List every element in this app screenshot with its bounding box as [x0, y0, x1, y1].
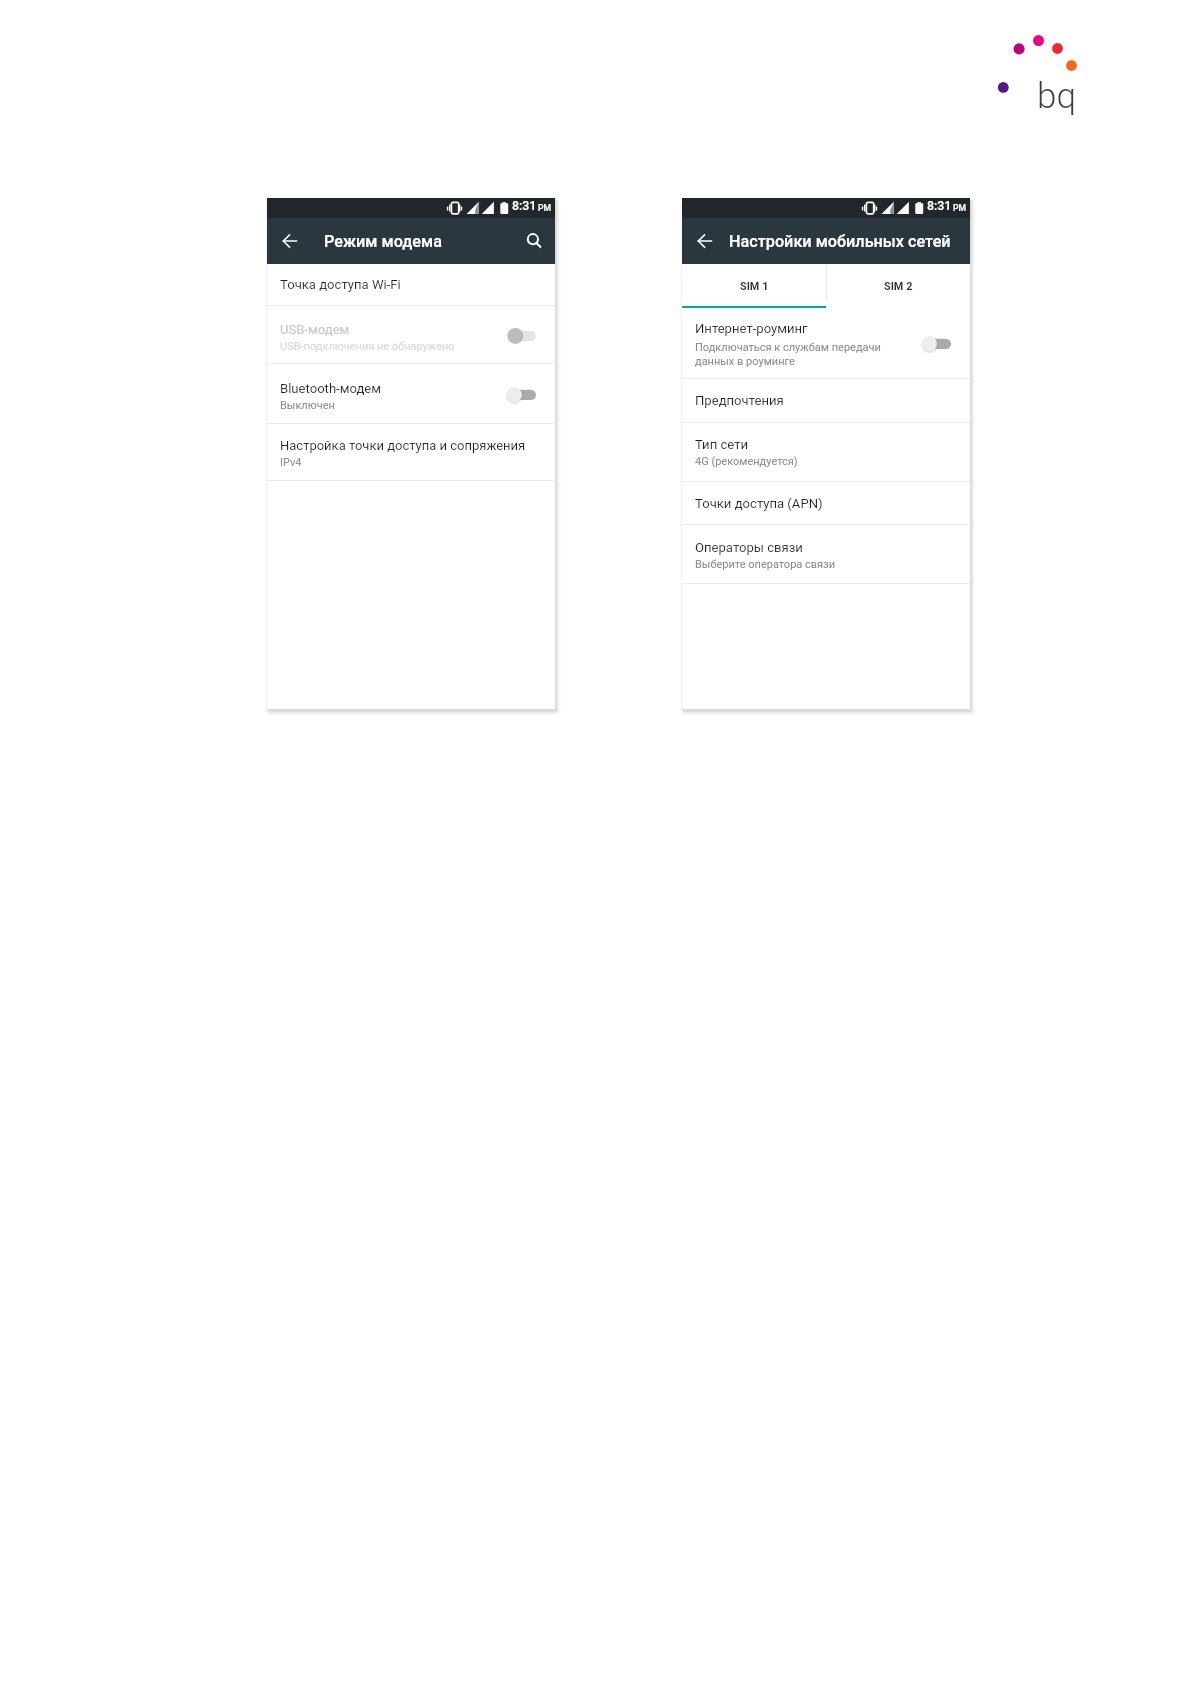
staticText: USB-подключения не обнаружено [280, 340, 455, 353]
staticText: 4G (рекомендуется) [695, 455, 798, 468]
staticText: Интернет-роуминг [695, 321, 808, 336]
staticText: Bluetooth-модем [280, 381, 381, 396]
staticText: PM [538, 203, 552, 213]
staticText: 8:31 [927, 198, 952, 213]
staticText: Операторы связи [695, 540, 803, 555]
staticText: Настройки мобильных сетей [729, 232, 951, 251]
button[interactable]: Search [519, 225, 551, 257]
staticText: SIM 1 [740, 280, 769, 293]
staticText: IPv4 [280, 456, 302, 469]
button[interactable]: bq logo [990, 20, 1090, 120]
button[interactable]: Точки доступа (APN) [682, 482, 970, 524]
staticText: PM [953, 203, 967, 213]
button[interactable]: Точка доступа Wi-Fi [267, 264, 555, 305]
staticText: Тип сети [695, 437, 749, 452]
button[interactable]: Тип сети [682, 423, 970, 481]
button[interactable]: SIM 1 [682, 264, 826, 308]
staticText: Выключен [280, 399, 335, 412]
button[interactable]: Операторы связи [682, 525, 970, 583]
button[interactable]: Switch [504, 383, 536, 405]
button[interactable]: SIM 2 [826, 264, 970, 308]
button[interactable]: Настройка точки доступа и сопряжения [267, 424, 555, 480]
staticText: SIM 2 [884, 280, 913, 293]
staticText: Точка доступа Wi-Fi [280, 277, 401, 292]
staticText: Предпочтения [695, 393, 784, 408]
button[interactable]: Предпочтения [682, 379, 970, 422]
button[interactable]: Back [274, 225, 306, 257]
button[interactable]: Switch [919, 332, 951, 354]
button[interactable]: Bluetooth-модем [267, 364, 555, 423]
button[interactable]: Back [689, 225, 721, 257]
staticText: 8:31 [512, 198, 537, 213]
button[interactable]: USB-модем [267, 306, 555, 363]
staticText: Точки доступа (APN) [695, 496, 823, 511]
staticText: Настройка точки доступа и сопряжения [280, 438, 526, 453]
staticText: bq [1037, 76, 1076, 117]
staticText: Выберите оператора связи [695, 558, 836, 571]
staticText: Подключаться к службам передачи данных в… [695, 341, 881, 368]
button[interactable]: Интернет-роуминг [682, 308, 970, 378]
button[interactable]: Switch [504, 324, 536, 346]
staticText: USB-модем [280, 322, 350, 337]
staticText: Режим модема [324, 232, 442, 251]
